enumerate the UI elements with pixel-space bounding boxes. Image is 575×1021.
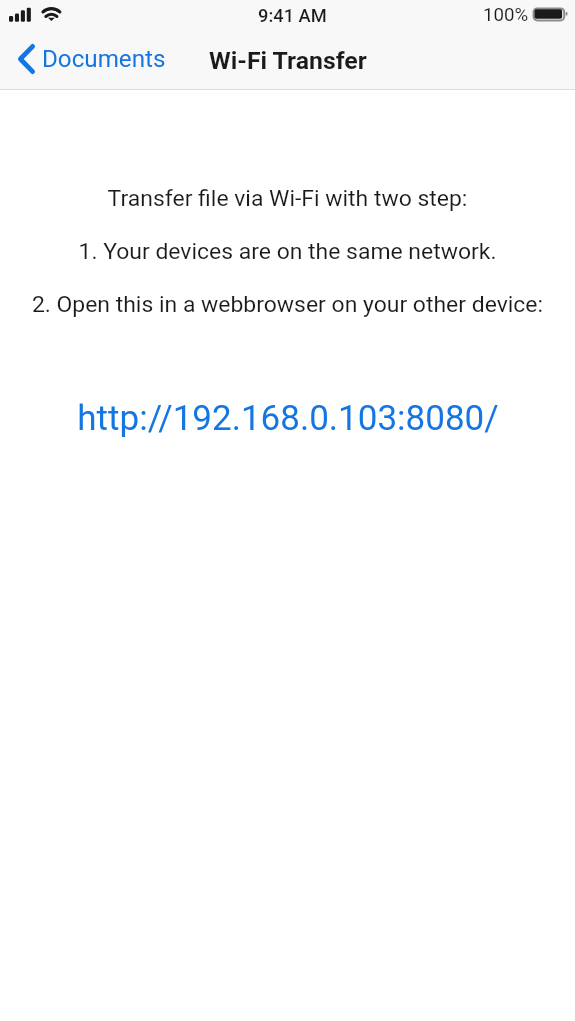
other: Back [18,44,35,74]
staticText: 100% [483,4,529,26]
other: Battery full [532,7,570,23]
staticText: 1. Your devices are on the same network. [0,238,575,265]
other: Wi-Fi [41,4,62,23]
staticText: 2. Open this in a webbrowser on your oth… [0,291,575,318]
staticText: Documents [42,45,166,73]
staticText: 9:41 AM [258,5,327,26]
button[interactable]: Back [0,42,178,80]
staticText: Transfer file via Wi-Fi with two step: [0,185,575,212]
button[interactable]: http://192.168.0.103:8080/ [61,390,515,447]
staticText: Wi-Fi Transfer [209,46,367,75]
other: Cellular signal [9,7,31,22]
